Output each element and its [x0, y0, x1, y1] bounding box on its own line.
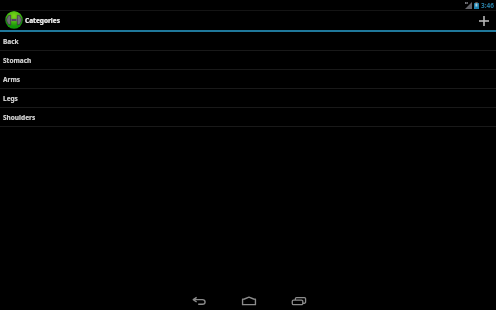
staticText: 3:46 — [481, 1, 494, 10]
staticText: Back — [3, 37, 19, 46]
button[interactable]: Back — [0, 32, 496, 50]
button[interactable]: Stomach — [0, 51, 496, 69]
staticText: Arms — [3, 75, 21, 84]
staticText: Shoulders — [3, 113, 36, 122]
button[interactable]: Home — [232, 291, 266, 310]
staticText: Legs — [3, 94, 18, 103]
button[interactable]: Add — [473, 11, 495, 31]
button[interactable]: Categories — [5, 11, 60, 29]
button[interactable]: Back — [182, 291, 216, 310]
button[interactable]: Legs — [0, 89, 496, 107]
staticText: Stomach — [3, 56, 32, 65]
staticText: Categories — [25, 16, 60, 25]
button[interactable]: Recent apps — [282, 291, 316, 310]
button[interactable]: Arms — [0, 70, 496, 88]
button[interactable]: Shoulders — [0, 108, 496, 126]
